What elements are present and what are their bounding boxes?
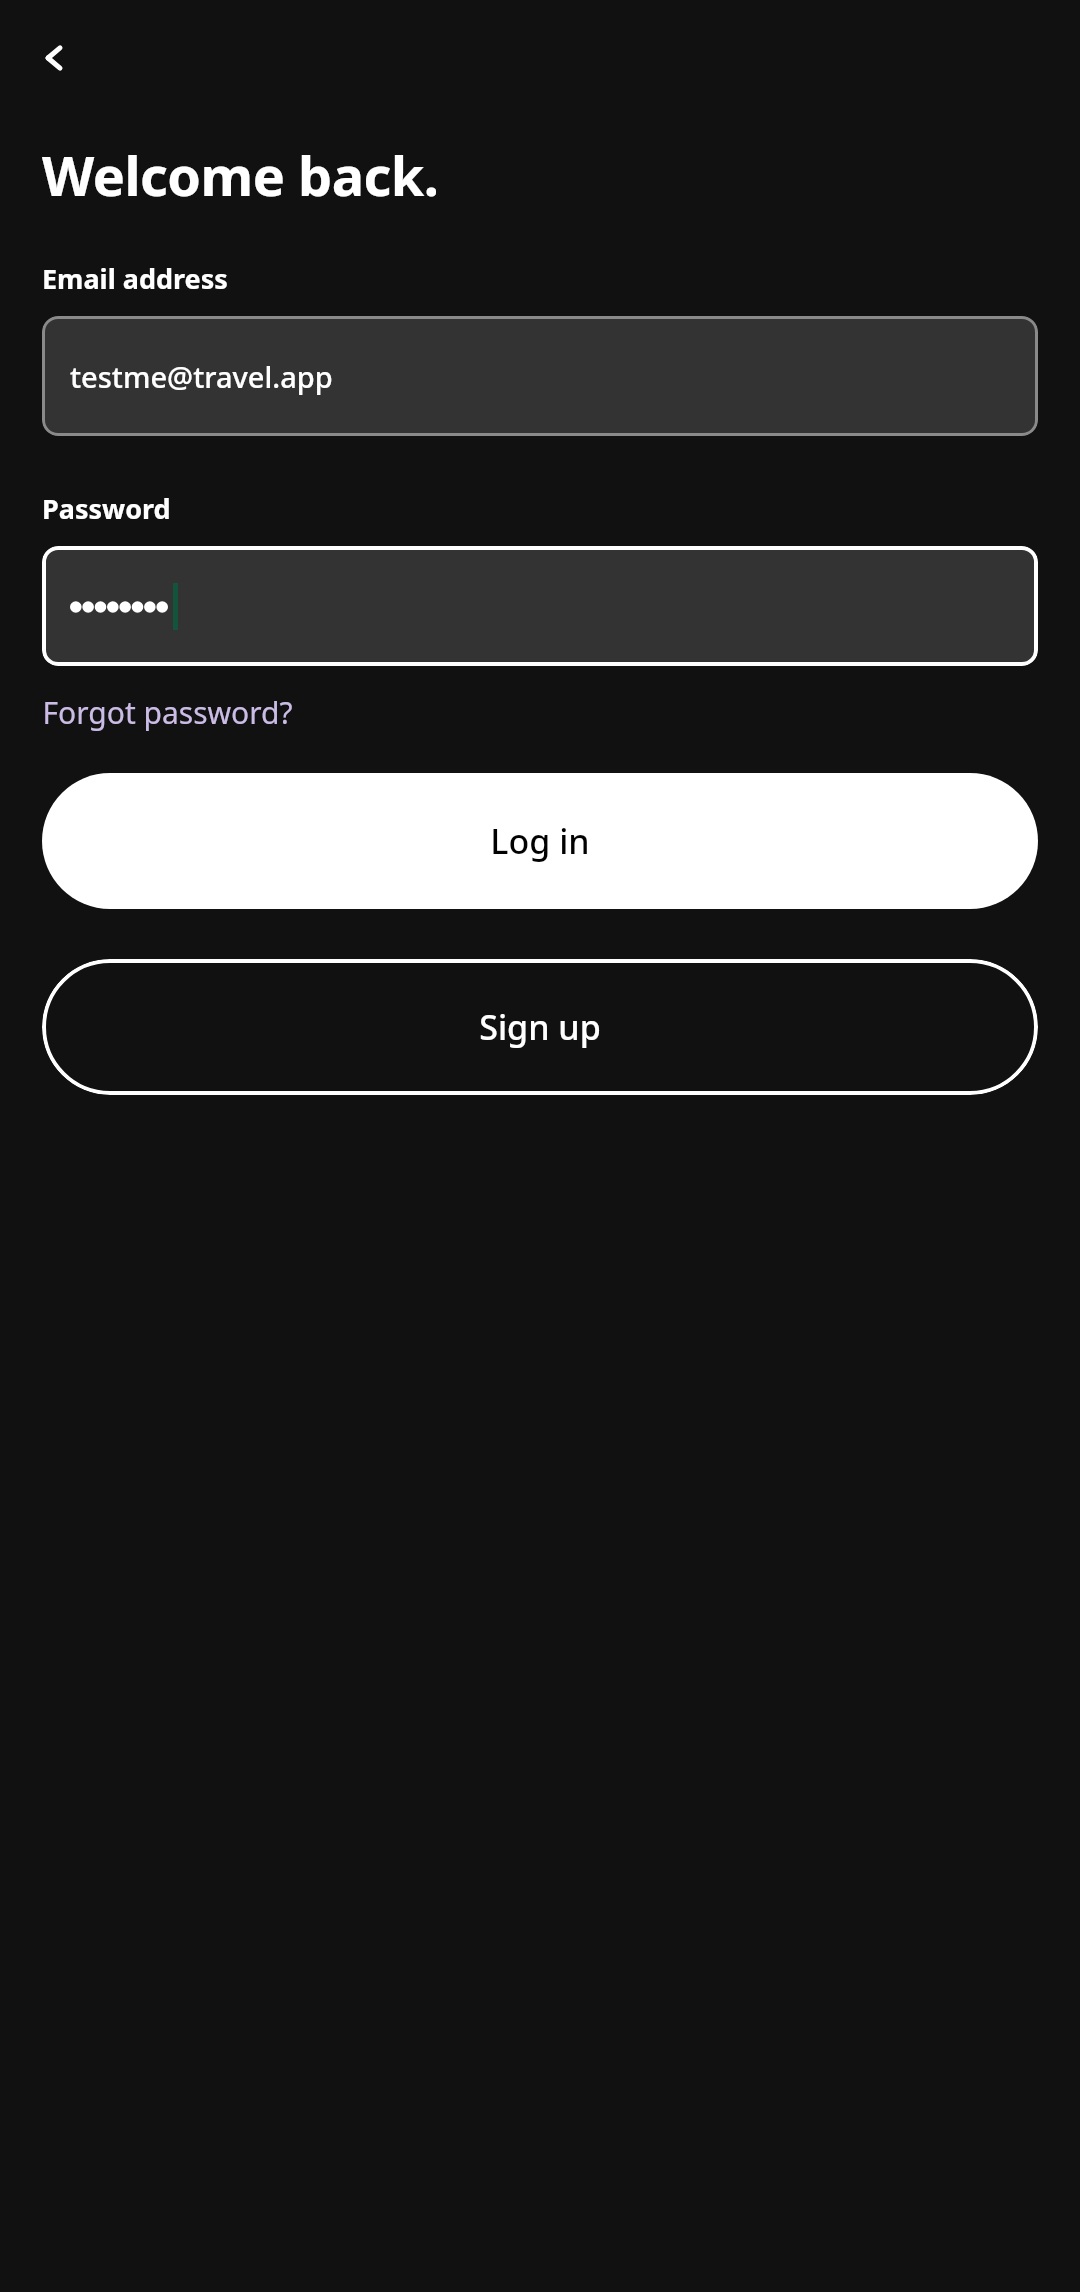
button[interactable]: Forgot password? [42,692,293,733]
staticText: Log in [490,818,590,864]
button[interactable] [42,546,1038,666]
staticText: Email address [42,260,228,297]
button[interactable]: Sign up [42,959,1038,1095]
button[interactable]: Back [26,30,82,86]
button[interactable]: Log in [42,773,1038,909]
button[interactable]: testme@travel.app [42,316,1038,436]
staticText: testme@travel.app [70,357,333,396]
staticText: Sign up [479,1004,601,1050]
staticText: Forgot password? [42,692,293,733]
staticText: Welcome back. [42,138,439,212]
staticText: Password [42,490,171,527]
